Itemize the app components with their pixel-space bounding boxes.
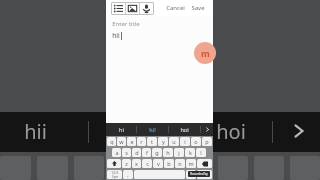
- staticText: j: [178, 149, 180, 156]
- button[interactable]: m: [186, 159, 196, 168]
- staticText: ,: [127, 171, 129, 178]
- staticText: Sym: [112, 175, 118, 179]
- staticText: f: [146, 149, 148, 156]
- staticText: x: [135, 160, 138, 167]
- button[interactable]: g: [152, 148, 162, 157]
- staticText: Enter title: [112, 20, 140, 28]
- button[interactable]: s: [122, 148, 131, 157]
- button[interactable]: v: [153, 159, 163, 168]
- staticText: a: [115, 149, 119, 156]
- staticText: Cancel: [166, 4, 185, 12]
- staticText: w: [119, 138, 124, 145]
- staticText: p: [205, 138, 209, 145]
- button[interactable]: a: [112, 148, 121, 157]
- staticText: e: [130, 138, 134, 145]
- button[interactable]: Enter: [197, 170, 212, 179]
- button[interactable]: Save: [191, 4, 205, 12]
- button[interactable]: .: [186, 170, 196, 179]
- button[interactable]: w: [117, 137, 126, 146]
- staticText: hii: [24, 118, 47, 145]
- button[interactable]: n: [175, 159, 185, 168]
- staticText: t: [151, 138, 153, 145]
- staticText: i: [184, 138, 186, 145]
- staticText: c: [146, 160, 149, 167]
- staticText: h: [166, 149, 170, 156]
- staticText: Recorded by: [190, 172, 208, 176]
- button[interactable]: j: [174, 148, 184, 157]
- button[interactable]: Space: [134, 170, 185, 179]
- button[interactable]: 123: [107, 170, 122, 179]
- button[interactable]: f: [142, 148, 151, 157]
- button[interactable]: q: [107, 137, 116, 146]
- staticText: o: [194, 138, 198, 145]
- button[interactable]: Cancel: [166, 4, 185, 12]
- button[interactable]: hoi: [169, 123, 200, 136]
- button[interactable]: p: [202, 137, 212, 146]
- button[interactable]: u: [169, 137, 179, 146]
- staticText: g: [155, 149, 159, 156]
- staticText: v: [157, 160, 160, 167]
- staticText: q: [110, 138, 114, 145]
- staticText: k: [189, 149, 192, 156]
- button[interactable]: b: [164, 159, 174, 168]
- staticText: r: [140, 138, 143, 145]
- staticText: n: [178, 160, 182, 167]
- staticText: 123: [111, 170, 118, 175]
- button[interactable]: r: [137, 137, 146, 146]
- button[interactable]: Shift: [107, 159, 121, 168]
- staticText: z: [125, 160, 128, 167]
- button[interactable]: o: [191, 137, 201, 146]
- button[interactable]: t: [147, 137, 157, 146]
- button[interactable]: c: [142, 159, 152, 168]
- button[interactable]: y: [158, 137, 168, 146]
- button[interactable]: i: [180, 137, 190, 146]
- button[interactable]: Backspace: [197, 159, 212, 168]
- button[interactable]: More suggestions: [201, 123, 213, 136]
- button[interactable]: hi: [106, 123, 136, 136]
- staticText: hoi: [216, 118, 246, 145]
- button[interactable]: z: [122, 159, 131, 168]
- button[interactable]: hi!: [137, 123, 168, 136]
- button[interactable]: Insert image: [128, 4, 137, 13]
- button[interactable]: h: [163, 148, 173, 157]
- button[interactable]: l: [196, 148, 206, 157]
- staticText: u: [172, 138, 176, 145]
- staticText: m: [201, 47, 210, 59]
- staticText: l: [200, 149, 202, 156]
- staticText: .: [190, 171, 192, 178]
- staticText: hi: [119, 126, 124, 133]
- staticText: d: [135, 149, 139, 156]
- button[interactable]: Voice input: [142, 4, 151, 13]
- staticText: b: [167, 160, 171, 167]
- staticText: hi!: [149, 126, 156, 133]
- button[interactable]: e: [127, 137, 136, 146]
- button[interactable]: d: [132, 148, 141, 157]
- staticText: s: [125, 149, 128, 156]
- staticText: hii: [112, 31, 120, 40]
- staticText: hoi: [180, 126, 189, 133]
- button[interactable]: Recording indicator: [194, 42, 216, 64]
- staticText: Save: [191, 4, 205, 12]
- button[interactable]: ,: [123, 170, 133, 179]
- staticText: y: [162, 138, 165, 145]
- button[interactable]: Checklist: [114, 4, 123, 13]
- button[interactable]: k: [185, 148, 195, 157]
- staticText: m: [188, 160, 194, 167]
- button[interactable]: x: [132, 159, 141, 168]
